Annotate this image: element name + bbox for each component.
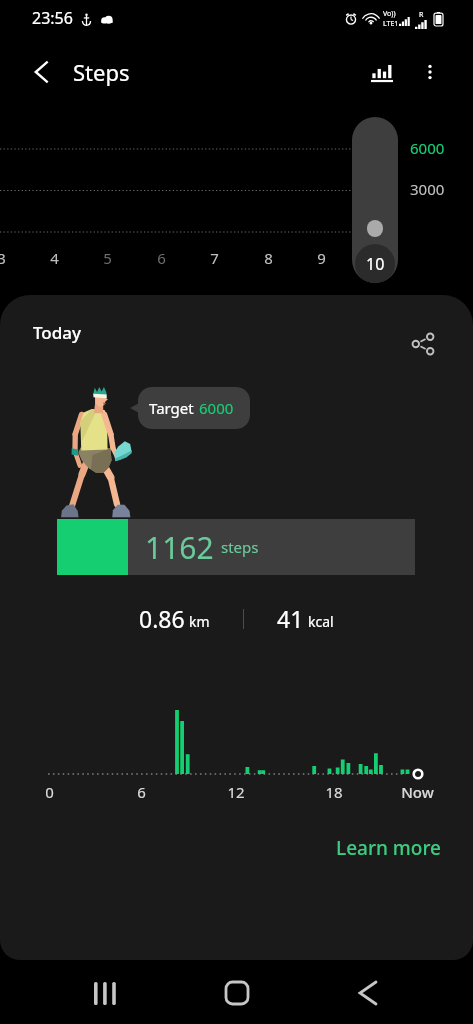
staticText: 6 bbox=[137, 782, 146, 802]
staticText: 0.86 bbox=[139, 603, 185, 634]
staticText: 12 bbox=[227, 782, 245, 802]
staticText: Now bbox=[401, 782, 434, 802]
button[interactable]: Back bbox=[335, 971, 401, 1015]
staticText: 6000 bbox=[410, 138, 445, 158]
button[interactable]: Learn more bbox=[328, 829, 449, 867]
button[interactable]: Recent apps bbox=[72, 971, 138, 1015]
staticText: 4 bbox=[50, 248, 59, 268]
staticText: Target bbox=[149, 398, 194, 418]
staticText: 9 bbox=[317, 248, 326, 268]
staticText: R bbox=[419, 10, 424, 20]
staticText: 3000 bbox=[410, 179, 445, 199]
button[interactable]: Home bbox=[204, 971, 270, 1015]
staticText: km bbox=[189, 612, 210, 631]
staticText: 10 bbox=[365, 248, 383, 268]
staticText: Vo)) bbox=[383, 9, 396, 19]
staticText: 8 bbox=[264, 248, 273, 268]
button[interactable]: More options bbox=[406, 48, 454, 96]
staticText: steps bbox=[221, 537, 259, 557]
staticText: 6000 bbox=[199, 398, 234, 418]
staticText: 3 bbox=[0, 248, 6, 268]
staticText: 1162 bbox=[145, 527, 214, 568]
staticText: 5 bbox=[103, 248, 112, 268]
staticText: Today bbox=[33, 321, 81, 344]
staticText: 18 bbox=[325, 782, 343, 802]
button[interactable]: Navigate up bbox=[18, 48, 66, 96]
staticText: 41 bbox=[277, 603, 304, 634]
button[interactable]: Trends chart bbox=[358, 48, 406, 96]
staticText: Learn more bbox=[336, 835, 441, 861]
button[interactable]: Selected day 10 bbox=[352, 117, 398, 283]
staticText: kcal bbox=[308, 612, 334, 631]
button[interactable]: Share bbox=[400, 321, 446, 367]
staticText: 10 bbox=[366, 253, 385, 275]
staticText: 23:56 bbox=[32, 7, 73, 29]
staticText: 6 bbox=[157, 248, 166, 268]
staticText: LTE1 bbox=[383, 19, 399, 29]
staticText: 0 bbox=[45, 782, 54, 802]
staticText: 7 bbox=[210, 248, 219, 268]
staticText: Steps bbox=[73, 57, 130, 87]
